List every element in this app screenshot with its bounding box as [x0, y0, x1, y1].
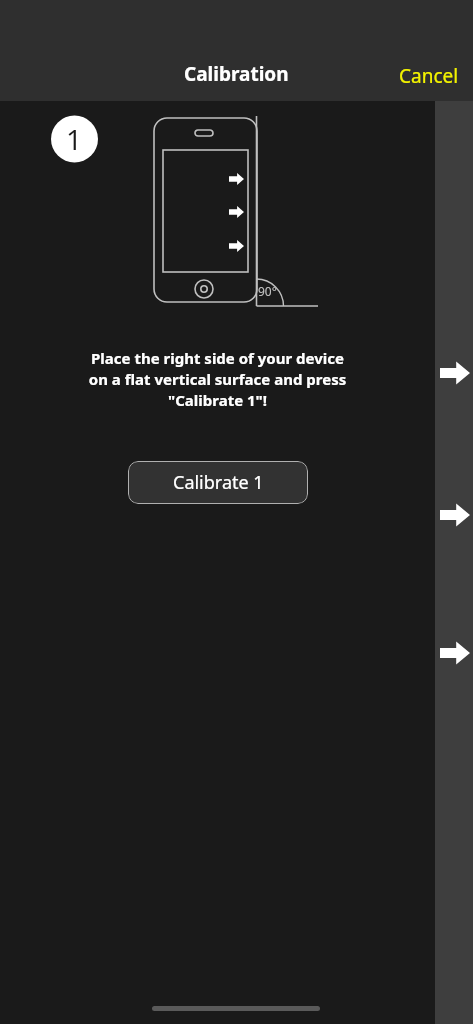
staticText: 90°: [258, 283, 277, 299]
staticText: Calibrate 1: [173, 470, 264, 495]
staticText: Place the right side of your device on a…: [0, 348, 435, 411]
button[interactable]: Cancel: [399, 63, 473, 101]
staticText: 1: [66, 120, 83, 158]
other: Right edge indicator: [435, 101, 473, 1024]
staticText: Cancel: [399, 63, 459, 89]
staticText: Calibration: [184, 61, 289, 87]
button[interactable]: Calibrate 1: [128, 461, 308, 504]
